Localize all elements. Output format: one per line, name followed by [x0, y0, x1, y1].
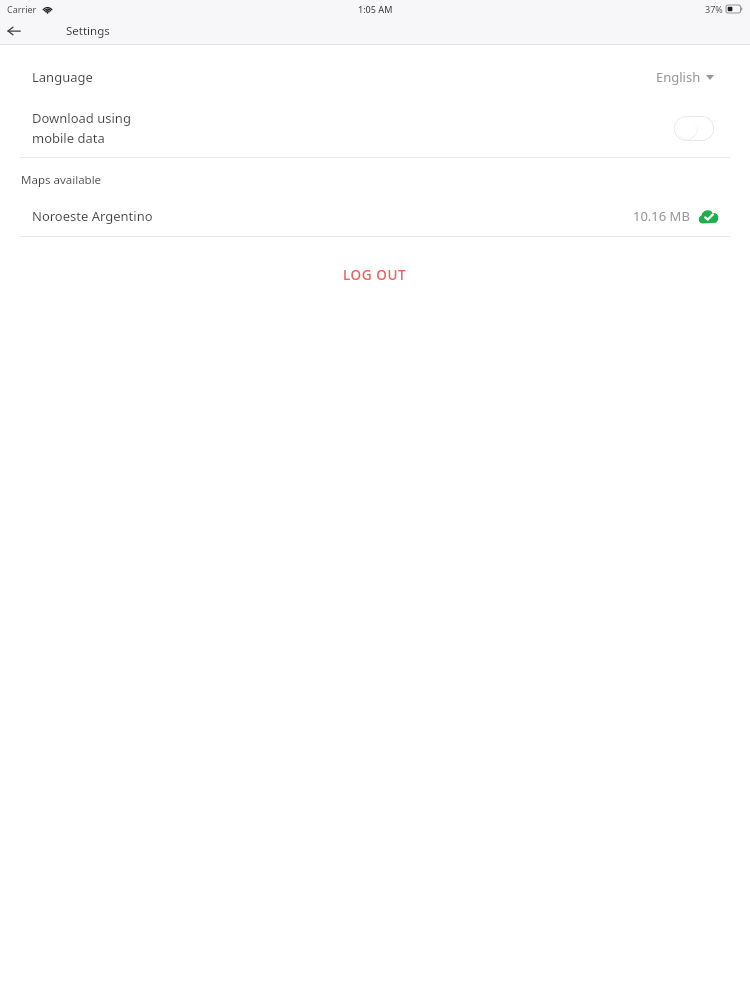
staticText: 10.16 MB — [633, 207, 690, 225]
staticText: 37% — [705, 3, 723, 15]
button[interactable]: Language — [20, 56, 730, 98]
staticText: Settings — [66, 23, 110, 39]
staticText: Maps available — [21, 172, 102, 188]
button[interactable]: Download using — [20, 98, 730, 158]
staticText: LOG OUT — [343, 266, 407, 284]
button[interactable]: LOG OUT — [325, 260, 425, 290]
staticText: Download using — [32, 109, 131, 127]
staticText: 1:05 AM — [358, 3, 393, 15]
staticText: mobile data — [32, 129, 105, 147]
button[interactable]: Download using mobile data — [674, 116, 714, 141]
button[interactable]: Noroeste Argentino — [20, 195, 730, 237]
staticText: English — [656, 68, 701, 86]
button[interactable]: Back — [3, 20, 25, 42]
staticText: Language — [32, 68, 93, 86]
staticText: Carrier — [7, 3, 37, 15]
staticText: Noroeste Argentino — [32, 207, 153, 225]
